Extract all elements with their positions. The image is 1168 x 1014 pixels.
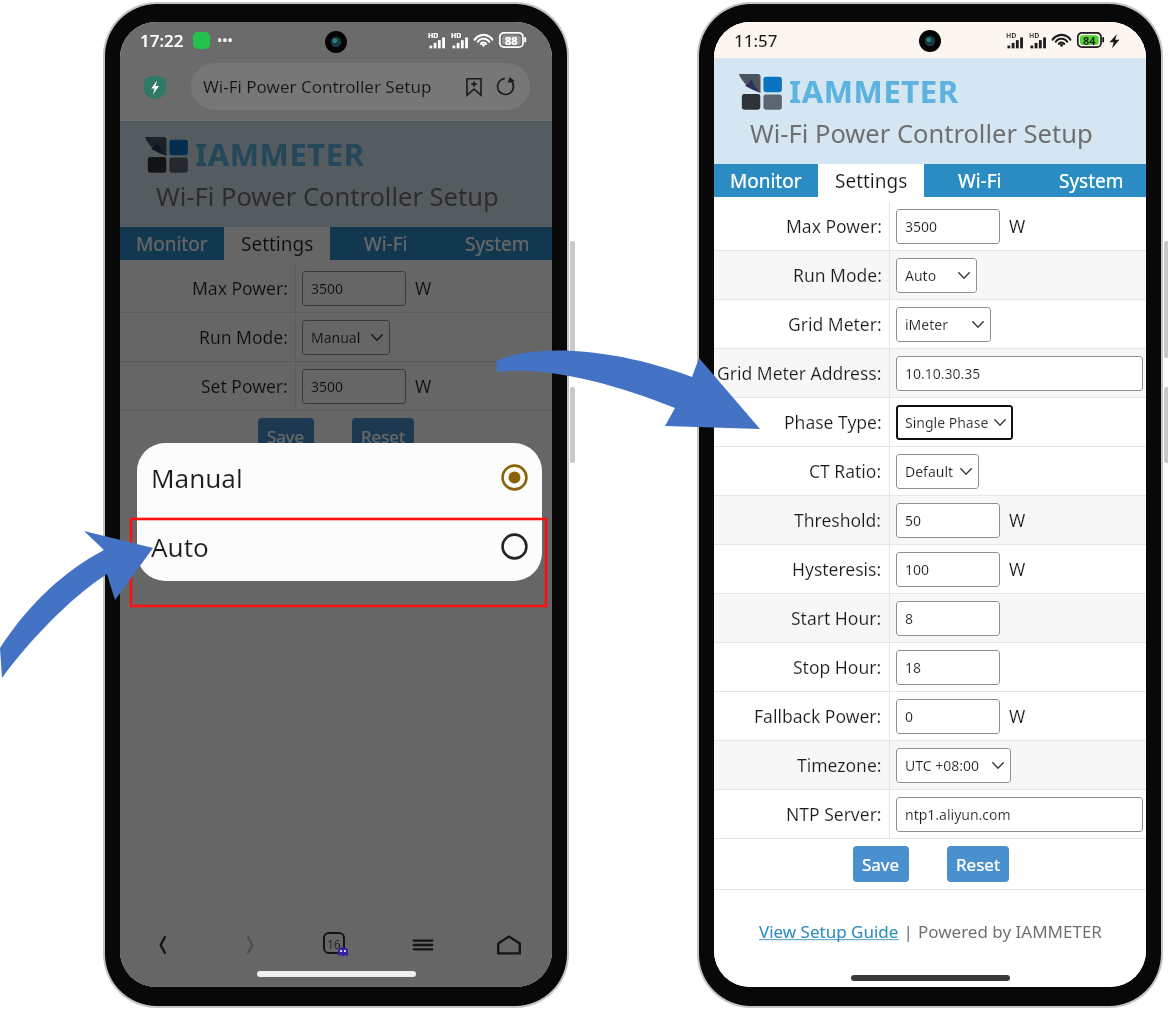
button[interactable]: Home <box>486 922 532 968</box>
staticText: 18 <box>905 658 922 677</box>
button[interactable]: 3500 <box>896 209 1000 244</box>
staticText: Max Power: <box>786 214 882 238</box>
staticText: Run Mode: <box>793 263 882 287</box>
staticText: 17:22 <box>140 29 184 52</box>
button[interactable]: Default <box>896 454 979 489</box>
button[interactable]: 3500 <box>302 369 406 404</box>
staticText: Settings <box>835 168 908 194</box>
staticText: Stop Hour: <box>793 655 882 679</box>
button[interactable]: Save <box>853 846 909 882</box>
button[interactable]: Manual <box>302 320 390 355</box>
staticText: Reset <box>361 425 406 448</box>
staticText: Start Hour: <box>791 606 882 630</box>
staticText: Save <box>267 425 305 448</box>
button[interactable]: Monitor <box>714 164 818 197</box>
button[interactable]: System <box>1036 164 1146 197</box>
staticText: IAMMETER <box>789 70 959 112</box>
staticText: Settings <box>241 231 314 257</box>
staticText: HD <box>451 31 462 41</box>
button[interactable]: ntp1.aliyun.com <box>896 797 1143 832</box>
button[interactable]: System <box>442 227 552 260</box>
button[interactable]: View Setup Guide <box>759 920 899 943</box>
button[interactable]: 18 <box>896 650 1000 685</box>
staticText: Fallback Power: <box>754 704 882 728</box>
staticText: 50 <box>905 511 922 530</box>
button[interactable]: Settings <box>224 227 330 260</box>
button[interactable]: Wi-Fi <box>330 227 442 260</box>
staticText: | <box>899 920 918 943</box>
staticText: IAMMETER <box>195 133 365 175</box>
staticText: CT Ratio: <box>809 459 882 483</box>
button[interactable]: 8 <box>896 601 1000 636</box>
staticText: Powered by IAMMETER <box>918 920 1102 943</box>
staticText: 10.10.30.35 <box>905 364 981 383</box>
staticText: Set Power: <box>201 374 288 398</box>
button[interactable]: 100 <box>896 552 1000 587</box>
staticText: W <box>1009 704 1026 728</box>
staticText: 88 <box>505 33 518 48</box>
staticText: Wi-Fi Power Controller Setup <box>156 179 499 214</box>
staticText: Max Power: <box>192 276 288 300</box>
staticText: Auto <box>151 529 209 564</box>
staticText: 8 <box>905 609 914 628</box>
staticText: W <box>1009 557 1026 581</box>
staticText: System <box>1059 168 1124 194</box>
staticText: Monitor <box>730 168 802 194</box>
staticText: 0 <box>905 707 914 726</box>
button[interactable]: Tabs <box>313 922 359 968</box>
button[interactable]: Settings <box>818 164 924 197</box>
staticText: Single Phase <box>905 413 989 432</box>
button[interactable]: Reset <box>352 418 414 454</box>
button[interactable]: UTC +08:00 <box>896 748 1011 783</box>
staticText: Reset <box>956 853 1001 876</box>
staticText: UTC +08:00 <box>905 756 980 775</box>
button[interactable]: Forward <box>227 922 273 968</box>
button[interactable]: iMeter <box>896 307 991 342</box>
staticText: Grid Meter Address: <box>717 361 882 385</box>
staticText: 3500 <box>905 217 938 236</box>
button[interactable]: Back <box>140 922 186 968</box>
staticText: Monitor <box>136 231 208 257</box>
staticText: W <box>1009 508 1026 532</box>
button[interactable]: Save <box>258 418 314 454</box>
staticText: Save <box>862 853 900 876</box>
staticText: Phase Type: <box>784 410 882 434</box>
staticText: Threshold: <box>794 508 882 532</box>
staticText: Default <box>905 462 954 481</box>
staticText: 84 <box>1083 33 1096 48</box>
button[interactable]: 3500 <box>302 271 406 306</box>
button[interactable]: Wi-Fi <box>924 164 1036 197</box>
staticText: Wi-Fi Power Controller Setup <box>750 116 1093 151</box>
other: Reload <box>496 77 515 96</box>
staticText: ntp1.aliyun.com <box>905 805 1011 824</box>
staticText: HD <box>1029 31 1040 41</box>
button[interactable]: Menu <box>400 922 446 968</box>
staticText: NTP Server: <box>786 802 882 826</box>
staticText: Wi-Fi <box>364 231 408 257</box>
staticText: HD <box>428 31 439 41</box>
button[interactable]: Wi-Fi Power Controller Setup <box>191 63 530 110</box>
staticText: 16 <box>327 936 341 952</box>
staticText: Run Mode: <box>199 325 288 349</box>
staticText: Timezone: <box>797 753 882 777</box>
staticText: 3500 <box>311 279 344 298</box>
button[interactable]: Reset <box>947 846 1009 882</box>
staticText: Wi-Fi <box>958 168 1002 194</box>
staticText: System <box>465 231 530 257</box>
staticText: Grid Meter: <box>788 312 882 336</box>
button[interactable]: 50 <box>896 503 1000 538</box>
button[interactable]: Single Phase <box>896 405 1013 440</box>
staticText: Auto <box>905 266 937 285</box>
button[interactable]: 10.10.30.35 <box>896 356 1143 391</box>
staticText: Wi-Fi Power Controller Setup <box>203 75 432 98</box>
button[interactable]: Manual <box>137 443 542 512</box>
button[interactable]: Auto <box>137 512 542 581</box>
button[interactable]: Auto <box>896 258 977 293</box>
staticText: W <box>415 374 432 398</box>
other: Site security <box>144 75 166 99</box>
staticText: Hysteresis: <box>792 557 882 581</box>
button[interactable]: 0 <box>896 699 1000 734</box>
staticText: Manual <box>151 460 243 495</box>
button[interactable]: Monitor <box>120 227 224 260</box>
staticText: Manual <box>311 328 361 347</box>
